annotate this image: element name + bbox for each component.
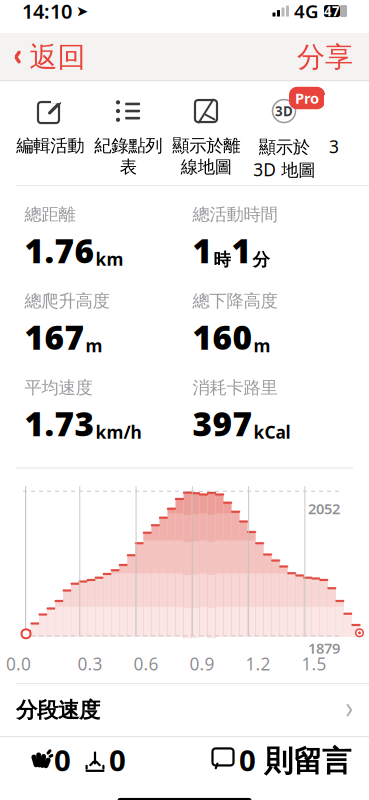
- staticText: 2052: [308, 499, 340, 518]
- staticText: 顯示於 3D 地圖: [253, 135, 315, 181]
- staticText: 1879: [308, 638, 340, 658]
- button[interactable]: 顯示於離線地圖: [167, 91, 245, 178]
- staticText: 時: [213, 249, 230, 270]
- button[interactable]: 按讚: [22, 738, 77, 782]
- staticText: 總爬升高度: [24, 290, 109, 312]
- staticText: 0.3: [77, 652, 102, 675]
- button[interactable]: 返回: [0, 33, 95, 81]
- staticText: 0.6: [133, 652, 158, 675]
- button[interactable]: 下載: [77, 738, 132, 782]
- staticText: 0: [109, 740, 126, 779]
- staticText: 47: [324, 2, 340, 20]
- button[interactable]: 分段速度: [0, 684, 369, 736]
- staticText: m: [253, 334, 270, 357]
- staticText: km: [95, 247, 123, 270]
- staticText: 0: [54, 740, 71, 779]
- staticText: 1.76: [24, 228, 94, 272]
- staticText: 160: [192, 315, 252, 359]
- button[interactable]: 分享: [281, 33, 369, 81]
- staticText: 總下降高度: [192, 290, 277, 312]
- staticText: 1.73: [24, 401, 94, 446]
- staticText: 總活動時間: [192, 204, 277, 225]
- staticText: 14:10: [22, 0, 72, 24]
- button[interactable]: 編輯活動: [11, 91, 89, 156]
- staticText: 紀錄點列表: [94, 135, 162, 178]
- staticText: 顯示於離線地圖: [172, 135, 240, 178]
- staticText: Pro: [295, 88, 319, 108]
- staticText: 1.2: [245, 652, 270, 675]
- staticText: ➤: [76, 3, 88, 19]
- staticText: 397: [192, 401, 252, 446]
- button[interactable]: 3: [323, 91, 345, 158]
- staticText: 3D: [275, 102, 293, 120]
- staticText: 0.9: [189, 652, 214, 675]
- staticText: 3: [329, 135, 339, 158]
- staticText: 0 則留言: [239, 740, 351, 779]
- staticText: 分享: [297, 40, 353, 74]
- staticText: 1: [192, 228, 212, 272]
- button[interactable]: 0 則留言: [211, 738, 351, 782]
- staticText: kCal: [253, 420, 290, 443]
- staticText: km/h: [95, 420, 141, 443]
- staticText: 0.0: [6, 652, 31, 675]
- staticText: 總距離: [24, 204, 75, 225]
- button[interactable]: 3D: [245, 91, 323, 181]
- staticText: 消耗卡路里: [192, 377, 277, 398]
- staticText: 平均速度: [24, 377, 92, 398]
- staticText: m: [85, 334, 102, 357]
- staticText: 1: [231, 228, 251, 272]
- staticText: 分: [252, 249, 269, 270]
- staticText: 分段速度: [16, 697, 100, 723]
- staticText: 167: [24, 315, 84, 359]
- staticText: 4G: [294, 0, 319, 23]
- staticText: 編輯活動: [16, 135, 84, 156]
- staticText: 1.5: [301, 652, 326, 675]
- staticText: 返回: [29, 40, 85, 74]
- button[interactable]: 紀錄點列表: [89, 91, 167, 178]
